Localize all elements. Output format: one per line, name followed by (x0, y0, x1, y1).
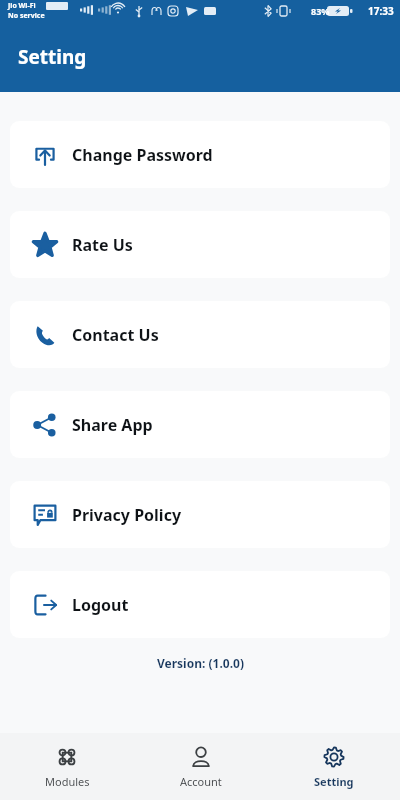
staticText: No service (8, 11, 45, 21)
staticText: Share App (72, 414, 153, 436)
staticText: Account (180, 774, 222, 789)
staticText: Setting (314, 774, 354, 789)
staticText: Setting (18, 44, 87, 70)
button[interactable]: Privacy Policy (10, 481, 390, 548)
staticText: Logout (72, 594, 129, 616)
button[interactable]: Modules (0, 733, 134, 800)
staticText: Contact Us (72, 324, 159, 346)
button[interactable]: Logout (10, 571, 390, 638)
button[interactable]: Share App (10, 391, 390, 458)
staticText: Modules (45, 774, 90, 789)
button[interactable]: Contact Us (10, 301, 390, 368)
staticText: Version: (1.0.0) (157, 655, 244, 671)
button[interactable]: Change Password (10, 121, 390, 188)
staticText: Jio Wi-Fi (8, 1, 36, 11)
staticText: 17:33 (368, 4, 394, 18)
button[interactable]: Setting (267, 733, 400, 800)
staticText: Privacy Policy (72, 504, 182, 526)
button[interactable]: Account (134, 733, 267, 800)
staticText: 83% (311, 5, 330, 17)
staticText: Rate Us (72, 234, 133, 256)
button[interactable]: Rate Us (10, 211, 390, 278)
staticText: Change Password (72, 144, 213, 166)
